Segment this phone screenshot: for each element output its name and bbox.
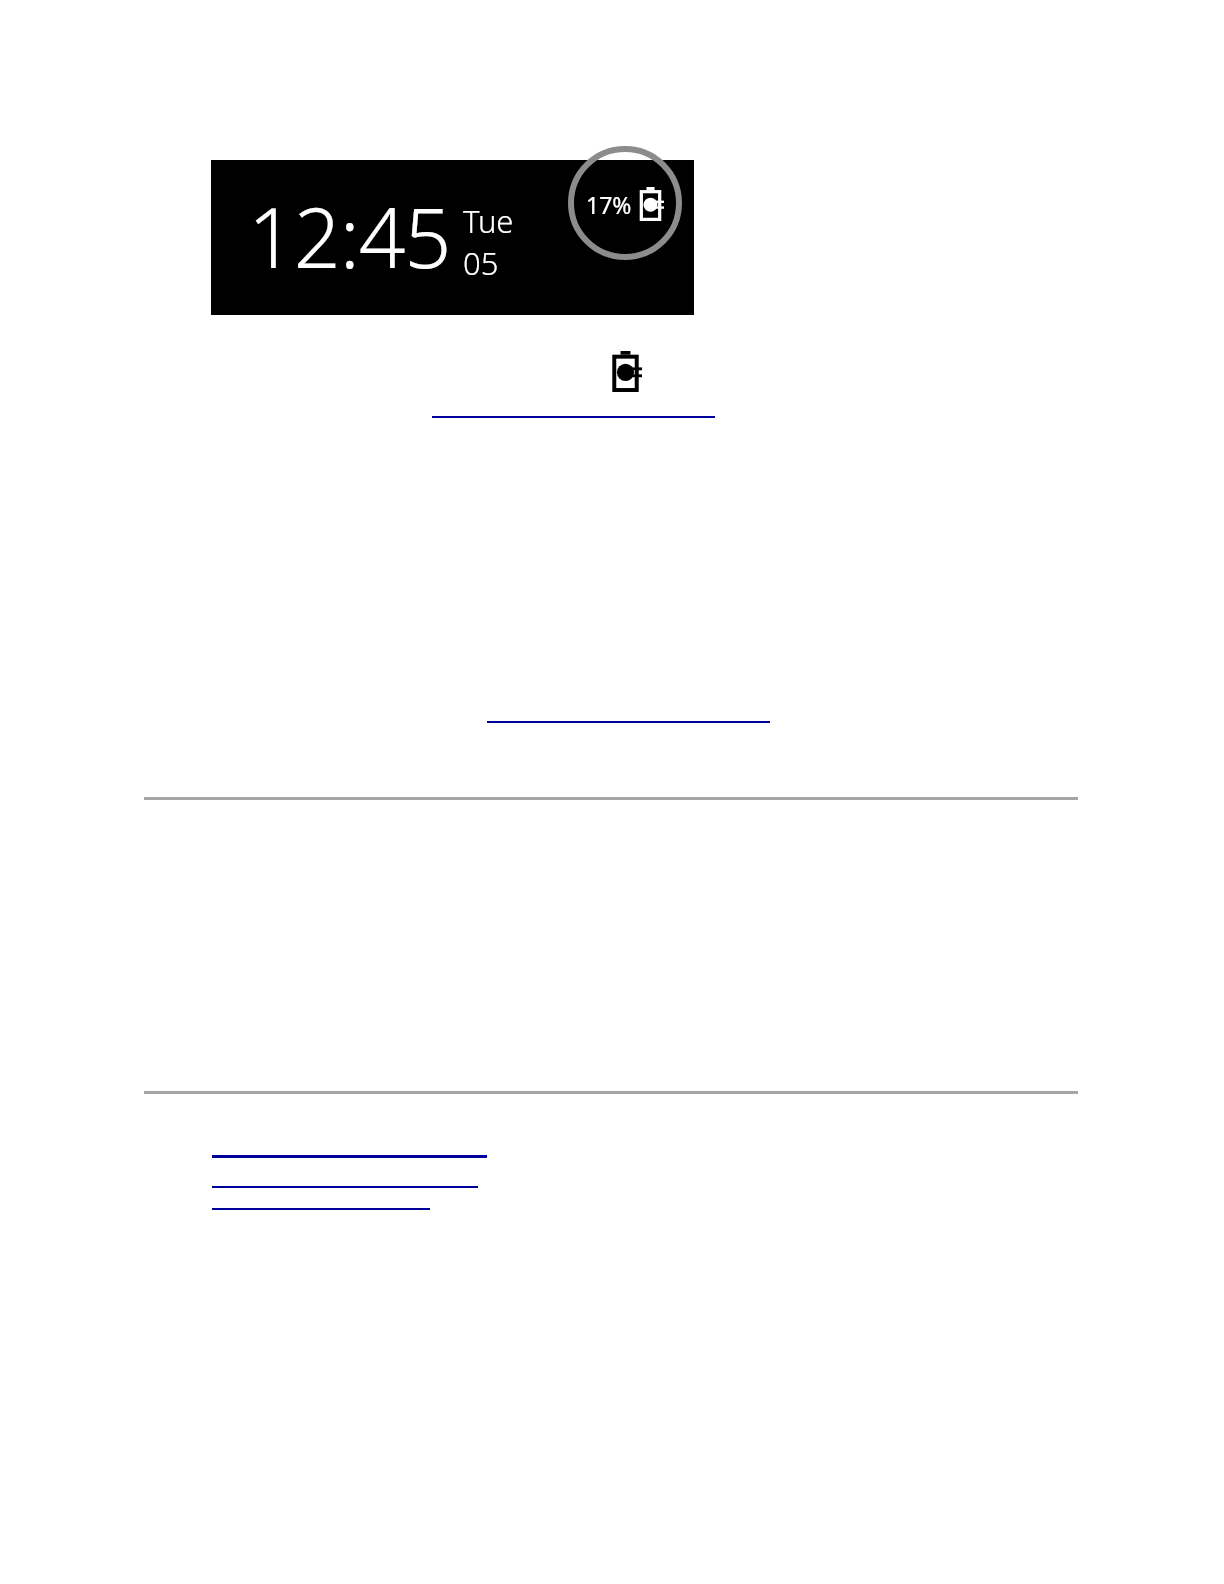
button[interactable]: Link <box>212 1170 478 1188</box>
staticText: Tue <box>463 200 514 242</box>
button[interactable]: Link <box>212 1192 430 1210</box>
button[interactable]: Battery 17 percent, charging <box>568 146 682 260</box>
button[interactable]: Link <box>432 400 715 418</box>
staticText: 05 <box>463 242 499 284</box>
button[interactable]: Link <box>487 705 770 723</box>
button[interactable]: Link <box>212 1140 487 1158</box>
staticText: 12:45 <box>248 180 451 292</box>
button[interactable]: Charging battery icon <box>609 351 642 392</box>
staticText: 17% <box>586 189 632 220</box>
button[interactable]: 12:45 <box>211 160 694 315</box>
